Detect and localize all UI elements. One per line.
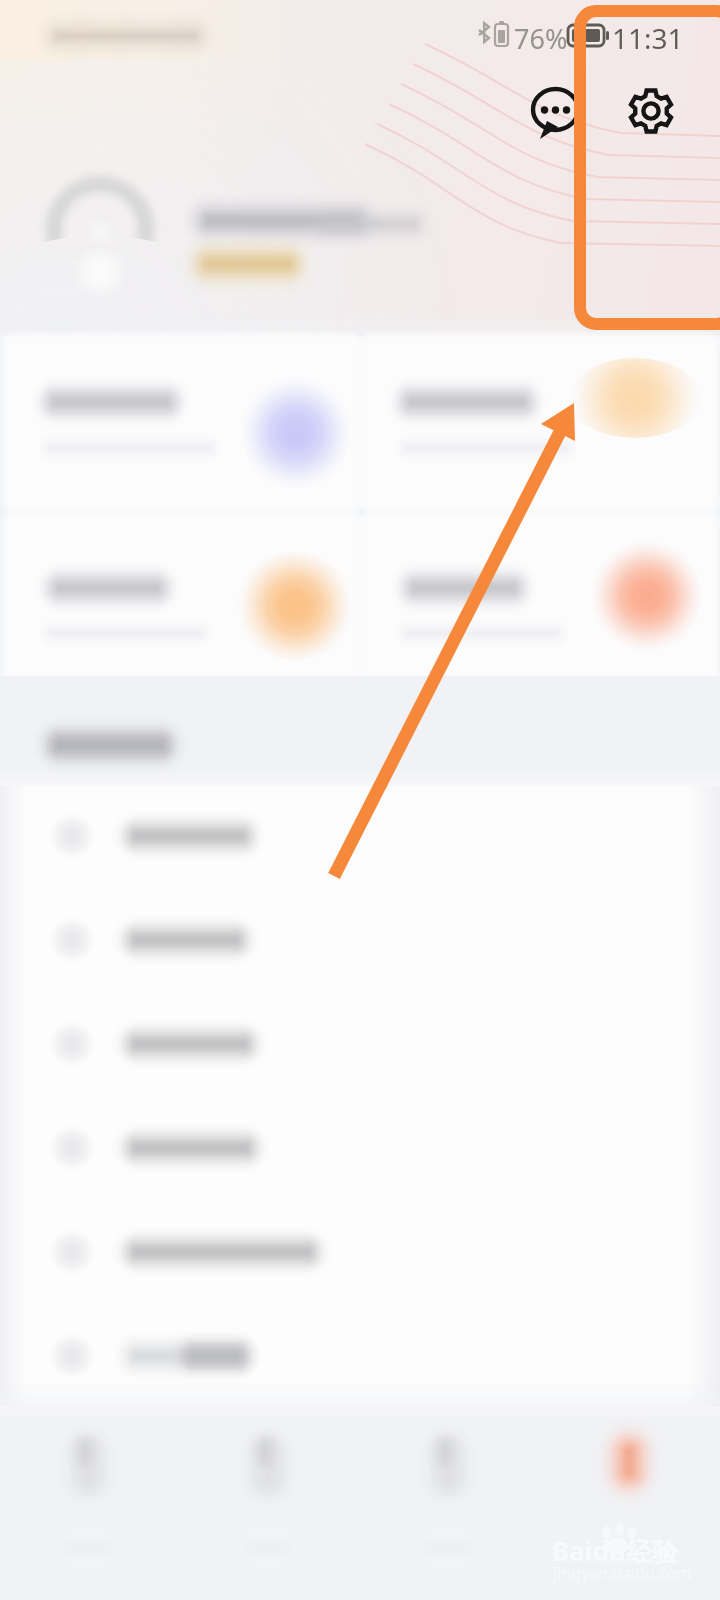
button[interactable]: Settings — [622, 82, 680, 140]
button[interactable]: Community — [360, 1418, 540, 1600]
staticText: 11:31 — [612, 19, 684, 57]
staticText: Baidu经验 — [552, 1533, 678, 1569]
button[interactable]: Profile — [540, 1418, 720, 1600]
button[interactable]: Home — [0, 1418, 180, 1600]
button[interactable]: Messages — [527, 82, 585, 140]
staticText: 76% — [514, 20, 568, 57]
button[interactable]: Discover — [180, 1418, 360, 1600]
